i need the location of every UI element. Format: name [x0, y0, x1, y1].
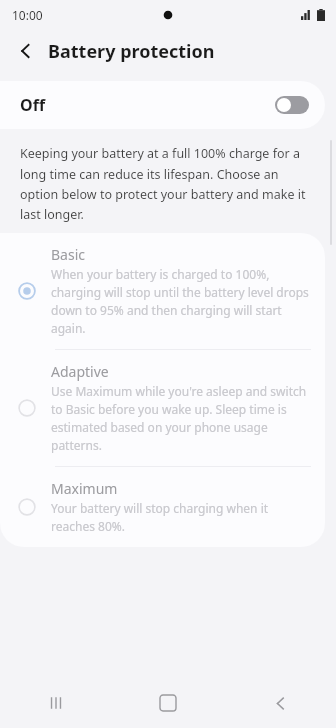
button[interactable]: Maximum — [0, 467, 325, 547]
staticText: Keeping your battery at a full 100% char… — [20, 145, 318, 222]
staticText: Adaptive — [51, 362, 109, 381]
button[interactable]: Home — [112, 678, 224, 728]
staticText: 10:00 — [12, 7, 43, 23]
other: Battery protection toggle — [275, 96, 309, 114]
button[interactable]: Basic — [0, 233, 325, 349]
button[interactable]: Back — [8, 33, 44, 69]
staticText: Battery protection — [48, 39, 215, 64]
staticText: Basic — [51, 245, 85, 264]
button[interactable]: Back — [224, 678, 336, 728]
staticText: When your battery is charged to 100%, ch… — [51, 266, 309, 337]
button[interactable]: Adaptive — [0, 350, 325, 466]
staticText: Use Maximum while you're asleep and swit… — [51, 383, 309, 454]
staticText: Maximum — [51, 479, 118, 498]
staticText: Your battery will stop charging when it … — [51, 500, 309, 535]
staticText: Off — [20, 94, 46, 116]
button[interactable]: Recent apps — [0, 678, 112, 728]
button[interactable]: Off — [0, 81, 325, 129]
